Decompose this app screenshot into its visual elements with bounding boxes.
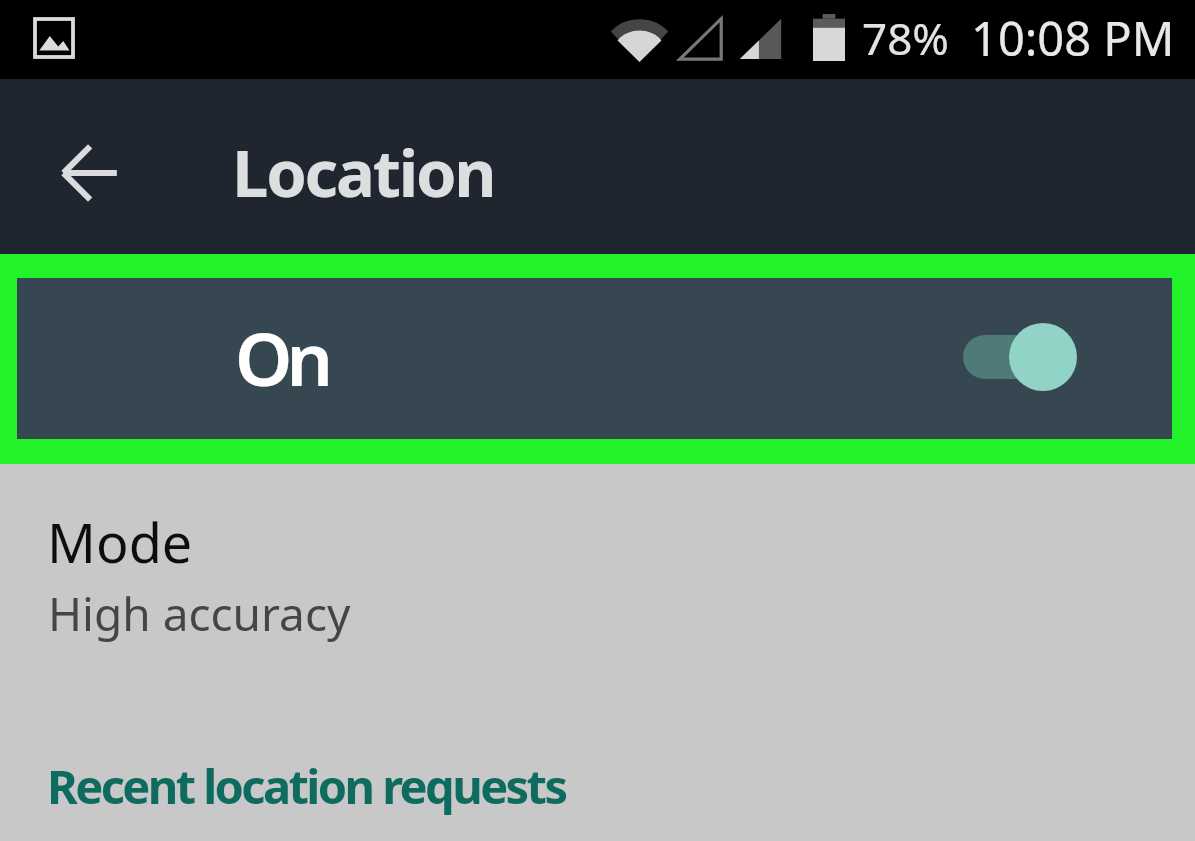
button[interactable]: Recent location requests <box>47 754 566 818</box>
staticText: Mode <box>47 505 193 579</box>
button[interactable]: On <box>17 278 1172 439</box>
button[interactable]: Mode <box>0 464 1195 624</box>
staticText: On <box>235 308 328 407</box>
button[interactable]: Location on/off switch <box>930 297 1110 417</box>
staticText: High accuracy <box>48 582 351 645</box>
staticText: Location <box>232 128 495 217</box>
staticText: 10:08 PM <box>971 6 1175 70</box>
staticText: 78% <box>862 8 949 68</box>
button[interactable]: Back <box>40 132 138 214</box>
